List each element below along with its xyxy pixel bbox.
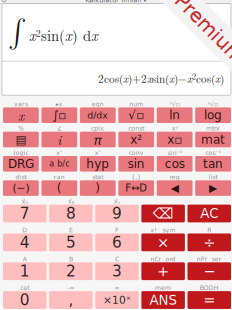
button[interactable]: ×10ˣ — [95, 291, 139, 309]
button[interactable]: 1 — [3, 262, 46, 280]
button[interactable]: x — [3, 107, 39, 123]
staticText: 8 — [66, 205, 76, 222]
staticText: a b/c — [49, 159, 69, 168]
button[interactable]: 6 — [95, 233, 139, 251]
staticText: mem — [155, 284, 171, 291]
staticText: dist — [15, 173, 26, 181]
button[interactable]: ANS — [141, 291, 185, 309]
staticText: ÷ — [203, 234, 215, 251]
button[interactable]: F↔D — [118, 180, 154, 196]
staticText: 9 — [112, 205, 122, 222]
staticText: mtrx — [206, 125, 220, 132]
button[interactable]: d/dx — [80, 107, 116, 123]
button[interactable]: 8 — [49, 205, 93, 222]
button[interactable]: cos — [157, 156, 192, 172]
button[interactable]: tan — [195, 156, 231, 172]
staticText: vars — [14, 101, 28, 108]
staticText: x″ — [95, 149, 101, 156]
button[interactable]: ln — [157, 107, 192, 123]
button[interactable]: AC — [187, 205, 231, 222]
staticText: cos⁻¹ — [206, 149, 221, 156]
button[interactable]: 3 — [95, 262, 139, 280]
button[interactable]: √▫ — [118, 107, 154, 123]
staticText: sin — [128, 157, 145, 171]
button[interactable]: 9 — [95, 205, 139, 222]
staticText: x' — [56, 149, 62, 156]
staticText: − — [203, 263, 215, 280]
staticText: π — [94, 130, 102, 149]
staticText: + — [157, 263, 169, 280]
button[interactable]: ◀ — [157, 180, 192, 196]
button[interactable]: π — [80, 132, 116, 147]
staticText: {,} — [131, 173, 141, 181]
button[interactable]: i — [41, 132, 77, 147]
button[interactable]: sin — [118, 156, 154, 172]
staticText: B — [69, 255, 73, 263]
button[interactable]: x▫ — [157, 132, 192, 147]
button[interactable]: = — [187, 291, 231, 309]
staticText: ln — [169, 108, 180, 122]
button[interactable]: − — [187, 262, 231, 280]
staticText: cplx — [91, 125, 104, 132]
staticText: Kalkulator Ilmiah ▾ — [85, 0, 146, 4]
staticText: const — [128, 125, 144, 132]
staticText: ∫ x2sin(x) dx — [8, 19, 98, 46]
staticText: nCr ord — [151, 255, 176, 263]
staticText: = — [203, 291, 215, 309]
button[interactable]: ⌫ — [141, 205, 185, 222]
button[interactable]: log — [195, 107, 231, 123]
staticText: ⁿ√▫ — [170, 101, 180, 108]
staticText: 1 — [20, 262, 30, 280]
button[interactable]: 7 — [3, 205, 46, 222]
button[interactable]: 4 — [3, 233, 46, 251]
staticText: ∞ — [114, 284, 119, 291]
button[interactable]: ( — [41, 180, 77, 196]
staticText: reg — [170, 173, 180, 181]
staticText: ⌫ — [153, 205, 174, 222]
button[interactable]: (−) — [3, 180, 39, 196]
staticText: stat — [92, 173, 103, 181]
button[interactable]: ÷ — [187, 233, 231, 251]
button[interactable]: a b/c — [41, 156, 77, 172]
button[interactable]: ∫▫ — [41, 107, 77, 123]
staticText: 7 — [20, 205, 30, 222]
staticText: ∫▫ — [52, 108, 66, 122]
staticText: i — [57, 130, 61, 149]
staticText: , — [68, 291, 73, 309]
button[interactable]: ) — [80, 180, 116, 196]
staticText: Premium — [165, 17, 232, 40]
staticText: AC — [200, 206, 218, 221]
staticText: ANS — [150, 292, 177, 308]
button[interactable]: 0 — [3, 291, 46, 309]
staticText: mat — [201, 132, 225, 146]
staticText: 5 — [66, 233, 76, 251]
staticText: R — [207, 227, 211, 234]
button[interactable]: 5 — [49, 233, 93, 251]
staticText: d/dx — [87, 110, 108, 121]
button[interactable]: 2 — [49, 262, 93, 280]
staticText: x — [18, 106, 24, 125]
button[interactable]: x² — [118, 132, 154, 147]
staticText: ) — [95, 181, 100, 195]
button[interactable]: mat — [195, 132, 231, 147]
button[interactable]: × — [141, 233, 185, 251]
button[interactable]: ▶ — [195, 180, 231, 196]
staticText: (−) — [12, 182, 29, 194]
button[interactable]: Options — [0, 0, 9, 3]
staticText: 3 — [112, 262, 122, 280]
staticText: √▫ — [128, 108, 144, 122]
button[interactable]: , — [49, 291, 93, 309]
button[interactable]: + — [141, 262, 185, 280]
button[interactable]: hyp — [80, 156, 116, 172]
staticText: E — [69, 227, 73, 234]
button[interactable]: DRG — [3, 156, 39, 172]
staticText: F↔D — [125, 182, 147, 194]
staticText: 2cos(x)+2xsin(x)−x2cos(x) — [98, 70, 224, 86]
staticText: x▫ — [167, 132, 182, 146]
staticText: conv — [129, 149, 144, 156]
staticText: logic — [13, 149, 28, 156]
staticText: log — [204, 108, 222, 122]
staticText: hyp — [86, 157, 109, 171]
staticText: × — [157, 234, 169, 251]
button[interactable]: ▤ — [3, 132, 39, 147]
